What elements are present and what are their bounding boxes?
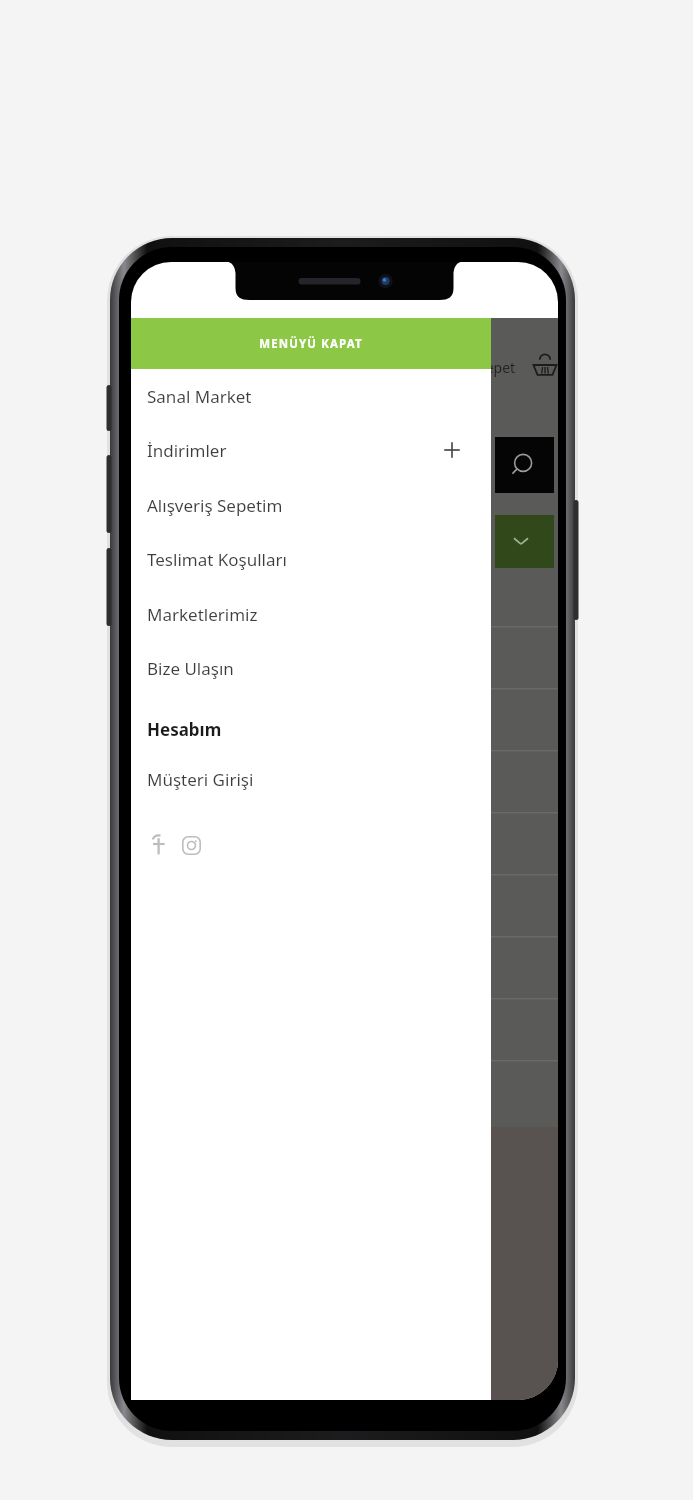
staticText: İndirimler xyxy=(147,439,227,462)
staticText: Sepet xyxy=(478,358,516,377)
button[interactable]: Instagram xyxy=(174,828,208,862)
other: Genişlet xyxy=(441,439,463,461)
staticText: Marketlerimiz xyxy=(147,603,258,626)
button[interactable]: Müşteri Girişi xyxy=(131,752,491,806)
button[interactable]: Teslimat Koşulları xyxy=(131,532,491,586)
staticText: Müşteri Girişi xyxy=(147,768,254,791)
button[interactable]: Hesabım xyxy=(131,703,491,755)
staticText: Alışveriş Sepetim xyxy=(147,494,283,517)
button[interactable]: MENÜYÜ KAPAT xyxy=(131,318,491,369)
staticText: Teslimat Koşulları xyxy=(147,548,287,571)
button[interactable]: Sanal Market xyxy=(131,369,491,423)
staticText: Bize Ulaşın xyxy=(147,657,234,680)
button[interactable]: Marketlerimiz xyxy=(131,587,491,641)
button[interactable]: Bize Ulaşın xyxy=(131,641,491,695)
staticText: Hesabım xyxy=(147,718,222,741)
staticText: Sanal Market xyxy=(147,385,252,408)
button[interactable]: Alışveriş Sepetim xyxy=(131,478,491,532)
staticText: MENÜYÜ KAPAT xyxy=(259,336,363,352)
button[interactable]: Menüyü kapat xyxy=(491,318,558,1400)
button[interactable]: İndirimler xyxy=(131,423,491,477)
button[interactable]: Facebook xyxy=(140,828,174,862)
